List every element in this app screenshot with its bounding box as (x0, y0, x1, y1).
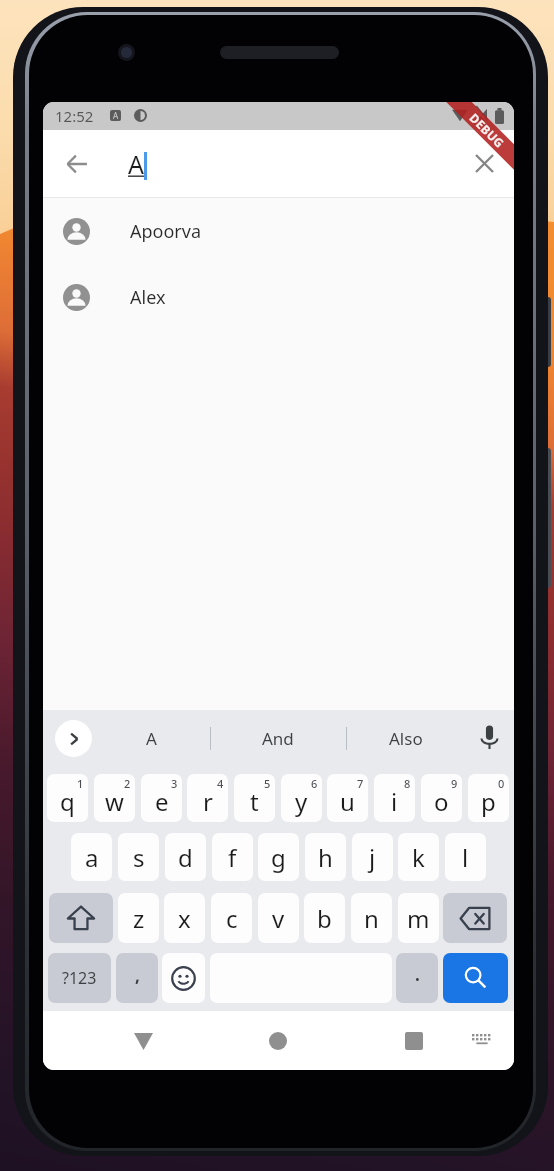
staticText: A (146, 727, 157, 750)
staticText: j (369, 841, 376, 874)
button[interactable]: k (398, 833, 439, 881)
button[interactable]: j (352, 833, 393, 881)
button[interactable]: e (141, 774, 182, 822)
staticText: Apoorva (130, 219, 202, 244)
button[interactable]: Apoorva (43, 198, 514, 264)
staticText: 7 (357, 776, 364, 791)
button[interactable]: , (116, 953, 158, 1003)
staticText: y (295, 785, 308, 818)
button[interactable]: r (187, 774, 228, 822)
button[interactable]: A (91, 710, 211, 767)
staticText: o (434, 785, 449, 818)
staticText: Alex (130, 285, 166, 310)
button[interactable]: g (258, 833, 299, 881)
button[interactable]: i (374, 774, 415, 822)
staticText: . (415, 963, 420, 986)
button[interactable]: o (421, 774, 462, 822)
button[interactable]: Search (443, 953, 508, 1003)
button[interactable]: Voice input (470, 718, 508, 756)
button[interactable]: d (165, 833, 206, 881)
button[interactable]: Shift (49, 893, 113, 943)
staticText: e (155, 785, 169, 818)
staticText: ?123 (62, 967, 97, 989)
button[interactable]: q (47, 774, 88, 822)
staticText: n (364, 902, 379, 935)
staticText: 8 (404, 776, 411, 791)
button[interactable]: Also (346, 710, 466, 767)
button[interactable]: Recent apps (390, 1017, 438, 1065)
staticText: v (272, 902, 285, 935)
staticText: Also (389, 727, 423, 750)
button[interactable]: c (211, 893, 252, 943)
button[interactable]: z (118, 893, 159, 943)
staticText: x (178, 902, 191, 935)
button[interactable]: Expand suggestions (55, 720, 92, 757)
staticText: a (85, 841, 99, 874)
staticText: s (133, 841, 145, 874)
staticText: l (462, 841, 469, 874)
staticText: 0 (498, 776, 505, 791)
button[interactable]: Home (254, 1017, 302, 1065)
button[interactable]: Back (43, 130, 110, 197)
staticText: g (271, 841, 286, 874)
staticText: d (178, 841, 193, 874)
button[interactable]: f (212, 833, 253, 881)
button[interactable]: n (351, 893, 392, 943)
staticText: 3 (171, 776, 178, 791)
staticText: 9 (451, 776, 458, 791)
staticText: c (226, 902, 238, 935)
staticText: k (412, 841, 425, 874)
button[interactable]: Back (119, 1017, 167, 1065)
staticText: q (60, 785, 75, 818)
button[interactable]: ?123 (48, 953, 111, 1003)
staticText: 2 (124, 776, 131, 791)
button[interactable]: y (281, 774, 322, 822)
staticText: A (113, 110, 119, 121)
staticText: b (317, 902, 332, 935)
button[interactable]: p (468, 774, 509, 822)
staticText: t (250, 785, 259, 818)
button[interactable]: v (258, 893, 299, 943)
staticText: r (203, 785, 213, 818)
button[interactable]: m (398, 893, 439, 943)
button[interactable]: a (71, 833, 112, 881)
staticText: f (228, 841, 237, 874)
button[interactable]: l (445, 833, 486, 881)
staticText: , (135, 964, 140, 987)
button[interactable]: t (234, 774, 275, 822)
button[interactable]: Clear search (455, 130, 514, 197)
button[interactable]: x (164, 893, 205, 943)
button[interactable]: . (396, 953, 438, 1003)
staticText: m (407, 902, 430, 935)
staticText: i (391, 785, 398, 818)
button[interactable]: Backspace (443, 893, 507, 943)
staticText: h (318, 841, 333, 874)
button[interactable]: Emoji (162, 953, 205, 1003)
button[interactable]: w (94, 774, 135, 822)
staticText: And (262, 727, 294, 750)
button[interactable]: Switch keyboard (457, 1017, 505, 1065)
staticText: p (481, 785, 496, 818)
staticText: u (340, 785, 355, 818)
staticText: 4 (217, 776, 224, 791)
staticText: w (105, 785, 124, 818)
button[interactable]: h (305, 833, 346, 881)
button[interactable]: And (218, 710, 338, 767)
button[interactable]: u (327, 774, 368, 822)
staticText: z (133, 902, 145, 935)
staticText: 1 (77, 776, 84, 791)
button[interactable]: s (118, 833, 159, 881)
staticText: DEBUG (466, 109, 508, 151)
staticText: 6 (311, 776, 318, 791)
staticText: A (128, 147, 144, 181)
staticText: 12:52 (55, 106, 94, 126)
button[interactable]: Alex (43, 264, 514, 330)
staticText: 5 (264, 776, 271, 791)
button[interactable]: b (304, 893, 345, 943)
